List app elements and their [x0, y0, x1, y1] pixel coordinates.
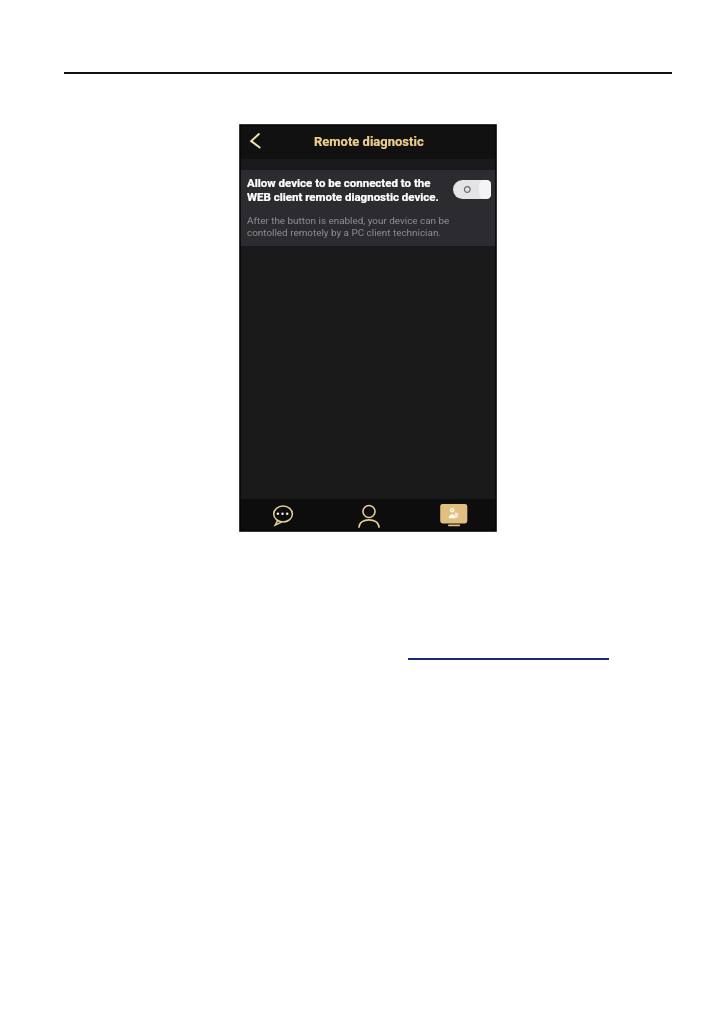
button[interactable]: Remote diagnostic [411, 499, 496, 531]
staticText: After the button is enabled, your device… [247, 215, 450, 239]
button[interactable]: Enable remote diagnostic [453, 180, 491, 199]
button[interactable]: Back [243, 126, 271, 154]
staticText: Remote diagnostic [314, 134, 424, 149]
staticText: Allow device to be connected to the WEB … [247, 176, 439, 204]
button[interactable]: Allow device to be connected to the WEB … [240, 170, 496, 246]
button[interactable]: Chat [240, 499, 325, 531]
button[interactable]: Profile [325, 499, 411, 531]
